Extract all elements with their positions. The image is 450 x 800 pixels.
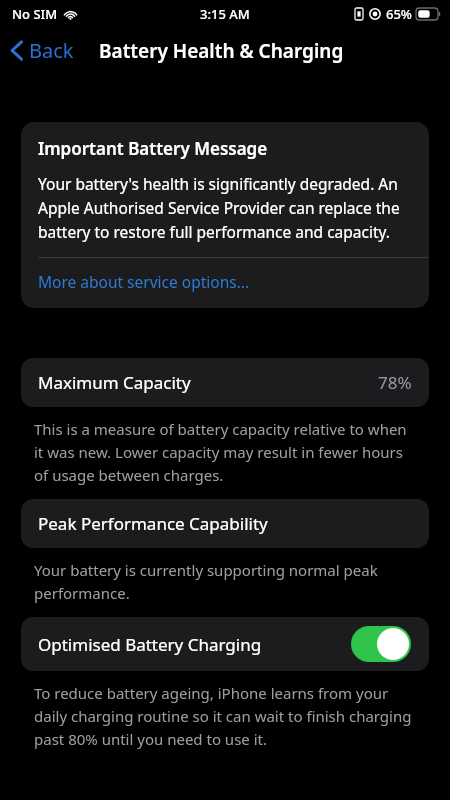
staticText: 65% <box>386 5 412 23</box>
staticText: 3:15 AM <box>200 5 250 23</box>
staticText: Maximum Capacity <box>38 371 191 394</box>
button[interactable]: More about service options... <box>21 258 429 305</box>
staticText: No SIM <box>12 5 58 23</box>
staticText: More about service options... <box>38 271 250 292</box>
button[interactable]: Back <box>0 33 82 68</box>
button[interactable]: Maximum Capacity <box>21 358 429 407</box>
staticText: Your battery's health is significantly d… <box>38 173 412 242</box>
staticText: Back <box>29 37 74 64</box>
staticText: Your battery is currently supporting nor… <box>34 560 416 603</box>
staticText: Peak Performance Capability <box>38 512 268 535</box>
staticText: This is a measure of battery capacity re… <box>34 419 416 485</box>
staticText: 78% <box>378 371 412 394</box>
staticText: Important Battery Message <box>38 137 268 160</box>
button[interactable]: Peak Performance Capability <box>21 499 429 548</box>
staticText: Battery Health & Charging <box>99 38 344 64</box>
staticText: Optimised Battery Charging <box>38 633 262 656</box>
staticText: To reduce battery ageing, iPhone learns … <box>34 683 416 749</box>
button[interactable]: Optimised Battery Charging toggle, on <box>351 626 411 662</box>
